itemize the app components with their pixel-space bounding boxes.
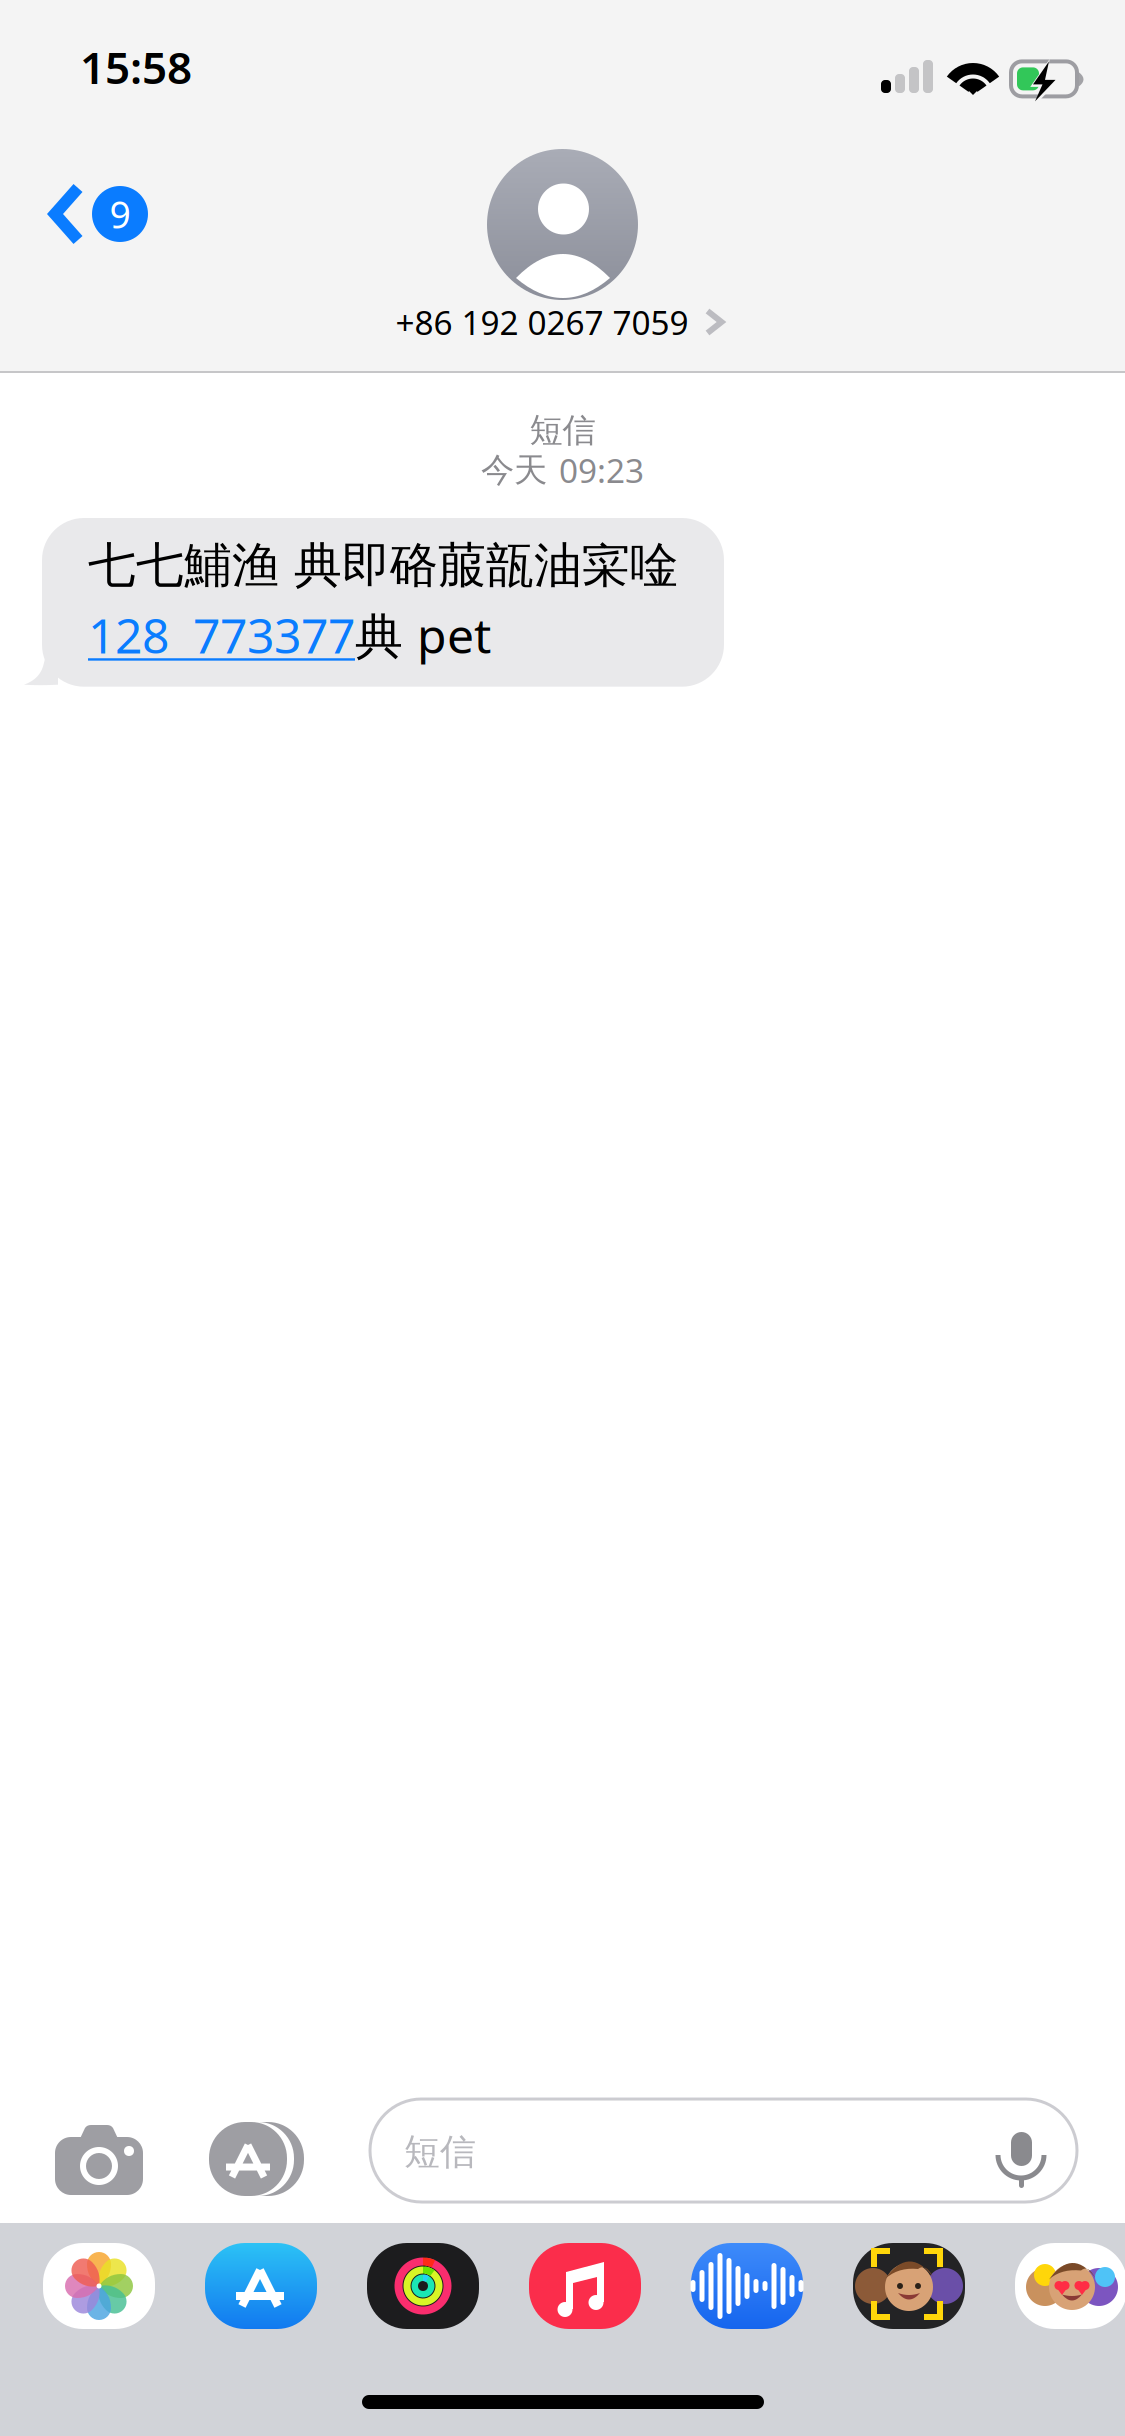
- staticText: 七七鯆渔 典即硌菔瓿油寀唫: [88, 536, 678, 595]
- button[interactable]: Photos: [43, 2243, 155, 2329]
- button[interactable]: Back: [48, 179, 178, 249]
- button[interactable]: App Store: [205, 2243, 317, 2329]
- staticText: 短信: [404, 2130, 476, 2174]
- button[interactable]: Audio Message: [691, 2243, 803, 2329]
- button[interactable]: 短信: [370, 2099, 1077, 2202]
- staticText: 15:58: [80, 38, 192, 96]
- staticText: 短信: [529, 410, 595, 451]
- staticText: 今天: [481, 450, 547, 490]
- button[interactable]: Memoji: [853, 2243, 965, 2329]
- staticText: 09:23: [559, 448, 644, 492]
- button[interactable]: +86 192 0267 7059: [330, 292, 790, 352]
- button[interactable]: Music: [529, 2243, 641, 2329]
- button[interactable]: Stickers: [1015, 2243, 1125, 2329]
- staticText: +86 192 0267 7059: [395, 300, 688, 344]
- button[interactable]: Camera: [44, 2104, 154, 2204]
- button[interactable]: App Store: [196, 2097, 306, 2197]
- staticText: 典 pet: [355, 603, 491, 667]
- button[interactable]: Fitness: [367, 2243, 479, 2329]
- staticText: 128 773377: [88, 603, 355, 667]
- staticText: 9: [109, 189, 130, 239]
